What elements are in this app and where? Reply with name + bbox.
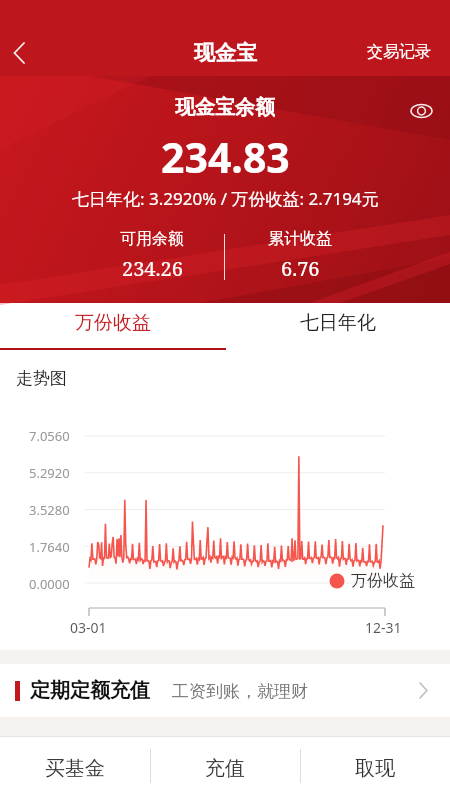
staticText: 7.0560 <box>29 427 70 445</box>
staticText: 6.76 <box>281 255 320 282</box>
staticText: 累计收益 <box>268 229 332 249</box>
button[interactable] <box>406 98 438 124</box>
staticText: 定期定额充值 <box>30 678 150 703</box>
staticText: 万份收益 <box>75 311 151 335</box>
staticText: 充值 <box>205 756 245 781</box>
button[interactable]: 七日年化 <box>225 303 450 343</box>
staticText: 03-01 <box>70 618 107 637</box>
staticText: 工资到账，就理财 <box>172 681 308 702</box>
staticText: 12-31 <box>365 618 402 637</box>
button[interactable]: 充值 <box>150 737 300 800</box>
staticText: 234.83 <box>161 129 290 177</box>
staticText: 可用余额 <box>120 229 184 249</box>
staticText: 现金宝 <box>194 40 257 66</box>
staticText: 七日年化 <box>300 311 376 335</box>
button[interactable]: 交易记录 <box>360 38 444 66</box>
button[interactable]: 买基金 <box>0 737 150 800</box>
staticText: 234.26 <box>122 255 183 282</box>
staticText: 买基金 <box>45 756 105 781</box>
staticText: 0.0000 <box>29 575 70 593</box>
button[interactable]: 万份收益 <box>0 303 225 343</box>
staticText: 走势图 <box>16 368 67 389</box>
button[interactable]: 累计收益 <box>200 226 400 252</box>
staticText: 1.7640 <box>29 538 70 556</box>
button[interactable]: 可用余额 <box>52 226 252 252</box>
staticText: 七日年化: 3.2920% / 万份收益: 2.7194元 <box>72 187 379 209</box>
button[interactable] <box>4 38 38 68</box>
button[interactable]: 定期定额充值 <box>0 664 450 717</box>
staticText: 交易记录 <box>367 42 431 62</box>
staticText: 现金宝余额 <box>175 95 275 119</box>
staticText: 5.2920 <box>29 464 70 482</box>
staticText: 取现 <box>355 756 395 781</box>
button[interactable]: 取现 <box>300 737 450 800</box>
staticText: 3.5280 <box>29 501 70 519</box>
staticText: 万份收益 <box>351 571 415 591</box>
